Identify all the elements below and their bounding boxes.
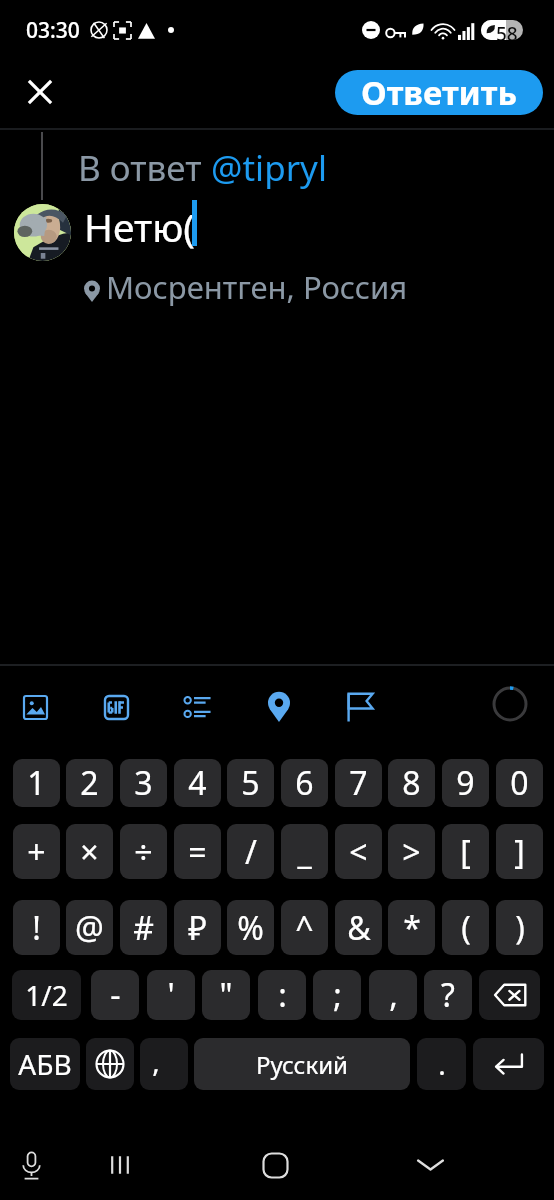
button[interactable]: Add GIF: [92, 683, 140, 731]
staticText: ]: [514, 830, 525, 874]
button[interactable]: 2: [66, 759, 113, 807]
staticText: <: [349, 830, 368, 874]
button[interactable]: Ответить: [335, 70, 543, 115]
button[interactable]: .: [417, 1038, 466, 1090]
button[interactable]: @: [66, 900, 113, 955]
button[interactable]: ×: [66, 824, 113, 879]
button[interactable]: 4: [174, 759, 221, 807]
staticText: ': [167, 973, 175, 1017]
button[interactable]: #: [120, 900, 167, 955]
staticText: АБВ: [18, 1045, 72, 1083]
staticText: 4: [188, 761, 207, 805]
button[interactable]: АБВ: [10, 1038, 80, 1090]
staticText: ": [219, 973, 233, 1017]
button[interactable]: :: [258, 970, 306, 1020]
other: Language: [95, 1049, 125, 1079]
button[interactable]: 5: [227, 759, 274, 807]
button[interactable]: Language: [86, 1038, 134, 1090]
button[interactable]: *: [388, 900, 435, 955]
button[interactable]: 9: [442, 759, 489, 807]
button[interactable]: Русский: [194, 1038, 410, 1090]
button[interactable]: Audience: [336, 683, 384, 731]
staticText: Ответить: [361, 70, 517, 115]
staticText: Нетю(: [84, 200, 196, 253]
button[interactable]: Home: [251, 1141, 299, 1189]
staticText: ^: [295, 906, 314, 950]
button[interactable]: -: [91, 970, 139, 1020]
button[interactable]: !: [13, 900, 60, 955]
button[interactable]: <: [335, 824, 382, 879]
staticText: :: [278, 973, 287, 1017]
staticText: 58: [496, 21, 518, 40]
staticText: #: [133, 906, 154, 950]
staticText: 6: [295, 761, 314, 805]
staticText: ): [515, 906, 525, 950]
button[interactable]: 3: [120, 759, 167, 807]
staticText: ,: [152, 1042, 160, 1080]
button[interactable]: ]: [496, 824, 543, 879]
other: Enter: [492, 1047, 526, 1081]
button[interactable]: Enter: [473, 1038, 544, 1090]
button[interactable]: &: [335, 900, 382, 955]
button[interactable]: 0: [496, 759, 543, 807]
button[interactable]: 1: [13, 759, 60, 807]
button[interactable]: 7: [335, 759, 382, 807]
button[interactable]: Add photo: [11, 683, 59, 731]
staticText: 1/2: [25, 976, 68, 1014]
button[interactable]: (: [442, 900, 489, 955]
button[interactable]: ?: [424, 970, 472, 1020]
staticText: +: [27, 830, 46, 874]
staticText: В ответ: [78, 144, 211, 192]
button[interactable]: ₽: [174, 900, 221, 955]
button[interactable]: ': [147, 970, 195, 1020]
staticText: !: [32, 906, 41, 950]
button[interactable]: _: [281, 824, 328, 879]
staticText: 5: [241, 761, 260, 805]
staticText: .: [438, 1045, 446, 1083]
button[interactable]: Character count: [486, 680, 534, 728]
staticText: 2: [80, 761, 99, 805]
staticText: 9: [456, 761, 475, 805]
button[interactable]: Add poll: [173, 683, 221, 731]
staticText: 0: [510, 761, 529, 805]
button[interactable]: /: [227, 824, 274, 879]
button[interactable]: Hide keyboard: [406, 1141, 454, 1189]
button[interactable]: ,: [369, 970, 417, 1020]
staticText: =: [188, 830, 207, 874]
staticText: _: [297, 830, 312, 874]
button[interactable]: 1/2: [12, 970, 81, 1020]
button[interactable]: >: [388, 824, 435, 879]
button[interactable]: ,: [140, 1038, 188, 1090]
staticText: 7: [349, 761, 368, 805]
button[interactable]: Close: [16, 68, 64, 116]
staticText: ₽: [188, 906, 207, 950]
button[interactable]: %: [227, 900, 274, 955]
button[interactable]: Backspace: [479, 970, 540, 1020]
staticText: /: [245, 830, 257, 874]
button[interactable]: ): [496, 900, 543, 955]
button[interactable]: [: [442, 824, 489, 879]
button[interactable]: 8: [388, 759, 435, 807]
button[interactable]: ;: [313, 970, 361, 1020]
staticText: 3: [134, 761, 153, 805]
staticText: ,: [389, 973, 398, 1017]
button[interactable]: Recent apps: [96, 1141, 144, 1189]
staticText: @tipryl: [211, 144, 327, 192]
staticText: 03:30: [26, 16, 80, 45]
button[interactable]: +: [13, 824, 60, 879]
staticText: [: [460, 830, 471, 874]
button[interactable]: =: [174, 824, 221, 879]
staticText: %: [237, 906, 264, 950]
button[interactable]: ": [202, 970, 250, 1020]
staticText: &: [347, 906, 371, 950]
button[interactable]: Add location: [255, 683, 303, 731]
staticText: ?: [441, 973, 455, 1017]
button[interactable]: 6: [281, 759, 328, 807]
button[interactable]: ÷: [120, 824, 167, 879]
staticText: >: [402, 830, 421, 874]
staticText: ;: [333, 973, 342, 1017]
button[interactable]: ^: [281, 900, 328, 955]
button[interactable]: Voice input: [7, 1141, 55, 1189]
staticText: ÷: [134, 830, 153, 874]
staticText: (: [461, 906, 471, 950]
